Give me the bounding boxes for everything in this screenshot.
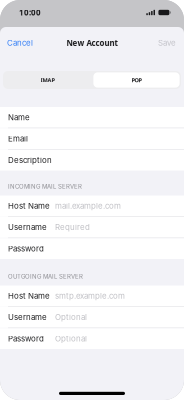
button[interactable]: Name [0, 107, 184, 128]
staticText: Optional [55, 312, 87, 322]
staticText: OUTGOING MAIL SERVER [8, 273, 83, 280]
staticText: IMAP [40, 76, 54, 84]
staticText: Email [8, 134, 28, 143]
button[interactable]: Email [0, 128, 184, 149]
button[interactable]: Username [0, 307, 184, 328]
button[interactable]: Host Name [0, 285, 184, 306]
staticText: 10:00 [19, 7, 41, 18]
staticText: POP [131, 76, 141, 84]
staticText: Optional [55, 334, 87, 343]
staticText: Username [8, 222, 47, 232]
button[interactable]: Save [158, 35, 184, 51]
button[interactable]: Host Name [0, 195, 184, 216]
staticText: Description [8, 155, 52, 165]
button[interactable]: Cancel [0, 35, 33, 51]
staticText: Cancel [7, 38, 33, 48]
staticText: Username [8, 312, 47, 322]
button[interactable]: Password [0, 328, 184, 349]
staticText: mail.example.com [55, 201, 121, 211]
button[interactable]: Username [0, 217, 184, 238]
staticText: Required [55, 222, 90, 232]
button[interactable]: POP [92, 71, 181, 89]
staticText: Password [8, 334, 44, 343]
staticText: smtp.example.com [55, 291, 125, 301]
staticText: Host Name [8, 201, 50, 211]
staticText: New Account [66, 38, 117, 48]
staticText: Host Name [8, 291, 50, 301]
staticText: Name [8, 113, 30, 122]
button[interactable]: IMAP [3, 71, 92, 89]
button[interactable]: Description [0, 150, 184, 170]
staticText: Save [158, 38, 176, 48]
button[interactable]: Password [0, 238, 184, 259]
staticText: INCOMING MAIL SERVER [8, 183, 82, 190]
staticText: Password [8, 244, 44, 253]
